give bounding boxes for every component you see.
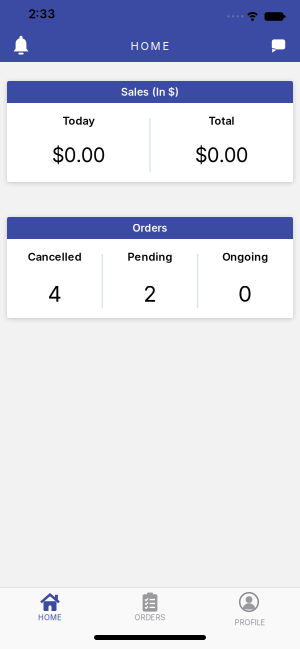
button[interactable]: ORDERS	[100, 588, 200, 638]
staticText: Today	[62, 114, 94, 127]
button[interactable]: Messages	[261, 29, 295, 63]
button[interactable]: PROFILE	[200, 588, 300, 638]
staticText: ORDERS	[134, 613, 165, 622]
staticText: 0	[238, 281, 252, 307]
staticText: Sales (In $)	[121, 86, 179, 98]
button[interactable]: HOME	[0, 588, 100, 638]
staticText: PROFILE	[234, 618, 265, 627]
staticText: Orders	[132, 222, 167, 234]
staticText: 4	[48, 281, 62, 307]
staticText: Cancelled	[28, 250, 82, 263]
staticText: 2:33	[28, 7, 55, 21]
staticText: H O M E	[130, 39, 169, 53]
staticText: $0.00	[195, 143, 248, 167]
staticText: Pending	[127, 250, 172, 263]
staticText: 2	[143, 281, 156, 307]
staticText: Ongoing	[222, 250, 268, 263]
staticText: Total	[208, 114, 234, 127]
button[interactable]: Notifications	[4, 29, 38, 63]
staticText: $0.00	[52, 143, 105, 167]
staticText: HOME	[38, 613, 62, 622]
